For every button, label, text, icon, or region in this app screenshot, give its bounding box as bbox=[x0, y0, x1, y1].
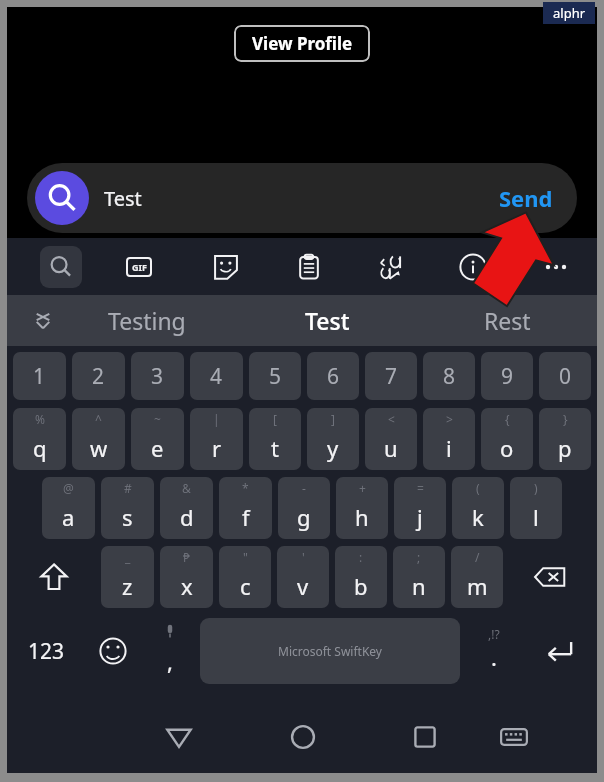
staticText: @ bbox=[63, 480, 74, 496]
button[interactable]: + bbox=[336, 477, 388, 539]
button[interactable]: ^ bbox=[72, 408, 125, 470]
button[interactable]: 9 bbox=[481, 352, 533, 400]
button[interactable]: | bbox=[190, 408, 243, 470]
staticText: } bbox=[563, 411, 568, 427]
button[interactable]: 0 bbox=[539, 352, 591, 400]
button[interactable]: Backspace bbox=[506, 546, 594, 608]
button[interactable]: 6 bbox=[307, 352, 359, 400]
staticText: Send bbox=[499, 183, 553, 213]
staticText: p bbox=[558, 433, 572, 463]
staticText: 9 bbox=[501, 362, 514, 391]
button[interactable]: Shift bbox=[10, 546, 98, 608]
button[interactable]: 4 bbox=[190, 352, 243, 400]
button[interactable]: Enter bbox=[524, 616, 594, 686]
button[interactable]: } bbox=[539, 408, 591, 470]
button[interactable]: ~ bbox=[131, 408, 184, 470]
staticText: b bbox=[354, 571, 368, 601]
button[interactable]: Recent apps bbox=[401, 713, 449, 761]
button[interactable]: > bbox=[423, 408, 475, 470]
staticText: _ bbox=[125, 549, 131, 565]
staticText: > bbox=[446, 411, 453, 427]
staticText: d bbox=[180, 502, 194, 532]
button[interactable]: < bbox=[365, 408, 417, 470]
button[interactable]: ) bbox=[510, 477, 562, 539]
button[interactable]: Info bbox=[452, 246, 494, 288]
button[interactable]: Testing bbox=[57, 295, 237, 346]
button[interactable]: { bbox=[481, 408, 533, 470]
staticText: w bbox=[90, 433, 108, 463]
button[interactable]: 1 bbox=[13, 352, 66, 400]
button[interactable]: 7 bbox=[365, 352, 417, 400]
staticText: & bbox=[182, 480, 191, 496]
button[interactable]: % bbox=[13, 408, 66, 470]
staticText: i bbox=[446, 433, 452, 463]
button[interactable]: / bbox=[451, 546, 503, 608]
staticText: : bbox=[359, 549, 363, 565]
button[interactable]: ( bbox=[452, 477, 504, 539]
button[interactable]: 8 bbox=[423, 352, 475, 400]
button[interactable]: View Profile bbox=[234, 25, 370, 62]
button[interactable]: Stickers bbox=[205, 246, 247, 288]
staticText: 3 bbox=[151, 362, 164, 391]
button[interactable]: Microsoft SwiftKey bbox=[200, 618, 460, 684]
button[interactable]: 5 bbox=[249, 352, 301, 400]
button[interactable]: Home bbox=[279, 713, 327, 761]
button[interactable]: Collapse suggestions bbox=[25, 303, 61, 339]
button[interactable]: 123 bbox=[10, 616, 82, 686]
staticText: , bbox=[167, 646, 173, 676]
button[interactable]: @ bbox=[42, 477, 95, 539]
staticText: alphr bbox=[553, 4, 586, 22]
button[interactable]: Rest bbox=[417, 295, 597, 346]
staticText: 8 bbox=[443, 362, 456, 391]
staticText: r bbox=[212, 433, 222, 463]
staticText: c bbox=[240, 571, 251, 601]
button[interactable]: Test bbox=[237, 295, 417, 346]
button[interactable]: Clipboard bbox=[288, 246, 330, 288]
button[interactable]: [ bbox=[249, 408, 301, 470]
button[interactable]: ' bbox=[277, 546, 329, 608]
staticText: Microsoft SwiftKey bbox=[278, 643, 382, 659]
staticText: t bbox=[271, 433, 279, 463]
staticText: View Profile bbox=[252, 32, 353, 55]
staticText: 2 bbox=[92, 362, 105, 391]
button[interactable]: ] bbox=[307, 408, 359, 470]
staticText: < bbox=[388, 411, 395, 427]
staticText: " bbox=[243, 549, 248, 565]
staticText: ] bbox=[331, 411, 335, 427]
button[interactable]: - bbox=[278, 477, 330, 539]
button[interactable]: Send bbox=[489, 175, 563, 221]
button[interactable]: ; bbox=[393, 546, 445, 608]
button[interactable]: GIF bbox=[118, 246, 160, 288]
button[interactable]: # bbox=[101, 477, 154, 539]
staticText: o bbox=[500, 433, 514, 463]
button[interactable]: Back bbox=[155, 713, 203, 761]
button[interactable]: : bbox=[335, 546, 387, 608]
staticText: g bbox=[297, 502, 311, 532]
button[interactable]: * bbox=[219, 477, 272, 539]
staticText: n bbox=[412, 571, 426, 601]
button[interactable]: Hide keyboard bbox=[490, 713, 538, 761]
button[interactable]: ₱ bbox=[160, 546, 213, 608]
staticText: 0 bbox=[559, 362, 572, 391]
staticText: GIF bbox=[132, 261, 147, 273]
button[interactable]: Translate bbox=[371, 246, 413, 288]
staticText: { bbox=[505, 411, 510, 427]
button[interactable]: & bbox=[160, 477, 213, 539]
button[interactable]: Period and punctuation bbox=[464, 616, 524, 686]
button[interactable]: Test bbox=[27, 163, 577, 233]
staticText: 7 bbox=[385, 362, 398, 391]
staticText: Test bbox=[305, 305, 350, 336]
staticText: k bbox=[472, 502, 484, 532]
staticText: / bbox=[475, 549, 480, 565]
staticText: q bbox=[33, 433, 47, 463]
button[interactable]: Search bbox=[40, 246, 82, 288]
button[interactable]: " bbox=[219, 546, 271, 608]
button[interactable]: = bbox=[394, 477, 446, 539]
button[interactable]: More options bbox=[535, 246, 577, 288]
button[interactable]: 3 bbox=[131, 352, 184, 400]
button[interactable]: Emoji bbox=[82, 616, 144, 686]
button[interactable]: 2 bbox=[72, 352, 125, 400]
staticText: s bbox=[122, 502, 133, 532]
button[interactable]: _ bbox=[101, 546, 154, 608]
button[interactable]: Comma and voice input bbox=[144, 616, 196, 686]
